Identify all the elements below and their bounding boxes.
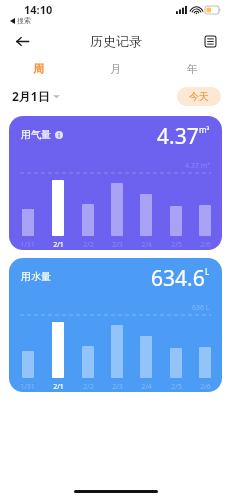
button[interactable]: 账单列表: [197, 28, 223, 54]
button[interactable]: 用水量: [9, 258, 222, 392]
button[interactable]: 2/3: [111, 183, 123, 250]
staticText: 历史记录: [90, 33, 142, 49]
staticText: 月: [110, 62, 121, 76]
button[interactable]: 1/31: [20, 209, 35, 250]
staticText: 2/1: [53, 382, 64, 392]
staticText: 634.6: [151, 264, 205, 293]
staticText: L: [205, 266, 210, 277]
button[interactable]: 2/2: [82, 204, 94, 250]
staticText: 2/6: [200, 382, 211, 392]
staticText: 2/3: [112, 382, 123, 392]
staticText: 1/31: [20, 382, 35, 392]
staticText: 636 L: [192, 303, 210, 313]
staticText: 2/4: [141, 240, 152, 250]
staticText: 14:10: [24, 2, 53, 17]
staticText: 2/6: [200, 240, 211, 250]
button[interactable]: 月: [77, 62, 154, 76]
button[interactable]: 2/5: [170, 348, 182, 392]
staticText: 2/3: [112, 240, 123, 250]
staticText: 4.37 m³: [185, 161, 210, 171]
staticText: 4.37: [157, 122, 199, 151]
button[interactable]: 2/4: [140, 194, 152, 250]
staticText: 用水量: [21, 270, 51, 283]
staticText: 2/4: [141, 382, 152, 392]
staticText: 周: [33, 62, 44, 76]
staticText: m³: [199, 124, 210, 135]
button[interactable]: 2/6: [199, 347, 211, 392]
staticText: 1/31: [20, 240, 35, 250]
staticText: 2/2: [83, 382, 94, 392]
staticText: 2/2: [83, 240, 94, 250]
staticText: 搜索: [17, 16, 31, 25]
button[interactable]: 2/4: [140, 336, 152, 392]
button[interactable]: 2/5: [170, 206, 182, 250]
button[interactable]: 用气量: [9, 116, 222, 250]
staticText: 2/5: [171, 240, 182, 250]
staticText: 用气量: [21, 128, 51, 141]
button[interactable]: 2/3: [111, 325, 123, 392]
button[interactable]: 2月1日: [12, 88, 60, 104]
button[interactable]: 年: [154, 62, 231, 76]
button[interactable]: 返回: [8, 27, 36, 55]
staticText: 年: [187, 62, 198, 76]
staticText: 2月1日: [12, 88, 50, 104]
button[interactable]: 2/1: [52, 322, 64, 392]
button[interactable]: 1/31: [20, 351, 35, 392]
staticText: 今天: [189, 90, 209, 103]
button[interactable]: 2/1: [52, 180, 64, 250]
staticText: 2/1: [53, 240, 64, 250]
button[interactable]: 2/2: [82, 346, 94, 392]
staticText: 2/5: [171, 382, 182, 392]
button[interactable]: 周: [0, 62, 77, 76]
button[interactable]: 2/6: [199, 205, 211, 250]
button[interactable]: 今天: [177, 87, 221, 106]
